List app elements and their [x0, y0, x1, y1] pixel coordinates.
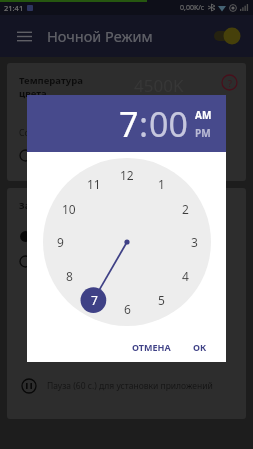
button[interactable]: ОК	[188, 337, 212, 357]
staticText: Сохранить	[19, 127, 63, 139]
staticText: 4500K	[134, 74, 184, 97]
button[interactable]: Температура	[7, 63, 246, 181]
staticText: 6	[124, 301, 131, 317]
button[interactable]: Toggle night mode	[211, 25, 241, 47]
button[interactable]: Запуск по расписанию	[7, 188, 246, 419]
staticText: 12	[120, 167, 134, 183]
staticText: 21:41	[4, 3, 24, 13]
staticText: PM	[195, 126, 211, 140]
button[interactable]: 10	[59, 199, 79, 219]
staticText: 4	[182, 268, 189, 284]
staticText: 5	[158, 292, 165, 308]
staticText: Запуск по расписанию	[19, 199, 131, 212]
button[interactable]: 1	[151, 174, 171, 194]
staticText: 0,00K/c	[180, 3, 205, 13]
staticText: 8	[66, 268, 73, 284]
button[interactable]: 6	[117, 299, 137, 319]
staticText: Температура	[19, 74, 83, 87]
staticText: 2	[182, 201, 189, 217]
button[interactable]: Пауза (60 с.) для установки приложений	[21, 378, 246, 394]
staticText: 3	[191, 234, 198, 250]
staticText: 9	[57, 234, 64, 250]
staticText: AM	[195, 108, 212, 122]
button[interactable]: 5	[151, 290, 171, 310]
staticText: ОК	[193, 341, 207, 353]
staticText: 1	[158, 176, 165, 192]
staticText: :	[139, 101, 149, 147]
button[interactable]: 7	[84, 290, 104, 310]
button[interactable]: Help	[221, 74, 238, 91]
button[interactable]: 12	[117, 165, 137, 185]
staticText: цвета	[19, 87, 47, 100]
button[interactable]: PM	[195, 126, 211, 140]
button[interactable]: 4	[175, 266, 195, 286]
staticText: Ночной Режим	[47, 26, 153, 46]
staticText: 00	[149, 101, 188, 147]
button[interactable]: 7	[119, 101, 139, 147]
staticText: Пауза (60 с.) для установки приложений	[47, 380, 213, 392]
button[interactable]: AM	[195, 108, 212, 122]
button[interactable]: ОТМЕНА	[127, 337, 176, 357]
button[interactable]: 9	[50, 232, 70, 252]
button[interactable]: 8	[59, 266, 79, 286]
button[interactable]: 00	[149, 101, 188, 147]
staticText: 10	[62, 201, 76, 217]
staticText: 7	[91, 292, 98, 308]
button[interactable]: 3	[184, 232, 204, 252]
button[interactable]: Menu	[12, 24, 36, 48]
staticText: 11	[87, 176, 101, 192]
button[interactable]: 11	[84, 174, 104, 194]
staticText: 7	[119, 101, 139, 147]
button[interactable]: 2	[175, 199, 195, 219]
staticText: ОТМЕНА	[132, 341, 171, 353]
staticText: ?	[228, 77, 232, 89]
